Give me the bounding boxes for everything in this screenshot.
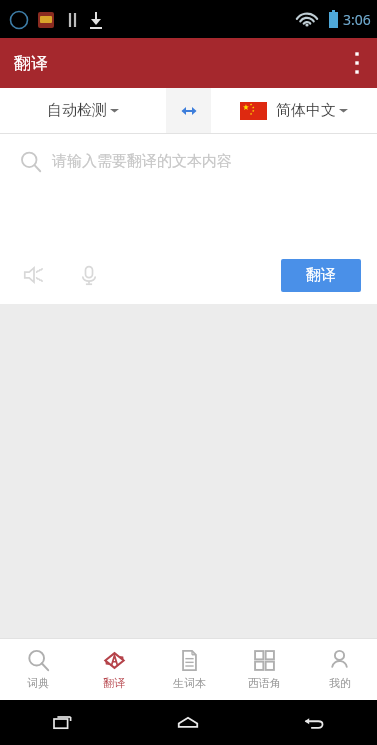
staticText: 翻译: [103, 676, 125, 690]
button[interactable]: 西语角: [227, 639, 302, 700]
button[interactable]: 请输入需要翻译的文本内容: [0, 134, 377, 189]
staticText: 西语角: [248, 676, 281, 690]
button[interactable]: Back: [251, 700, 377, 745]
button[interactable]: 我的: [302, 639, 377, 700]
button[interactable]: More options: [337, 38, 377, 88]
staticText: 翻译: [306, 266, 336, 285]
button[interactable]: 翻译: [76, 639, 152, 700]
button[interactable]: Recents: [0, 700, 125, 745]
staticText: 生词本: [173, 676, 206, 690]
staticText: 自动检测: [47, 101, 107, 120]
staticText: 简体中文: [276, 101, 336, 120]
button[interactable]: 自动检测: [0, 88, 166, 133]
staticText: 请输入需要翻译的文本内容: [52, 152, 232, 171]
button[interactable]: 词典: [0, 639, 76, 700]
button[interactable]: 生词本: [152, 639, 227, 700]
staticText: 翻译: [14, 53, 48, 74]
button[interactable]: 简体中文: [211, 88, 377, 133]
button[interactable]: Listen: [16, 257, 52, 293]
button[interactable]: 翻译: [281, 259, 361, 292]
staticText: 我的: [329, 676, 351, 690]
staticText: 词典: [27, 676, 49, 690]
button[interactable]: Swap languages: [166, 88, 211, 133]
button[interactable]: Voice input: [71, 257, 107, 293]
staticText: 3:06: [343, 10, 371, 29]
button[interactable]: Home: [125, 700, 251, 745]
